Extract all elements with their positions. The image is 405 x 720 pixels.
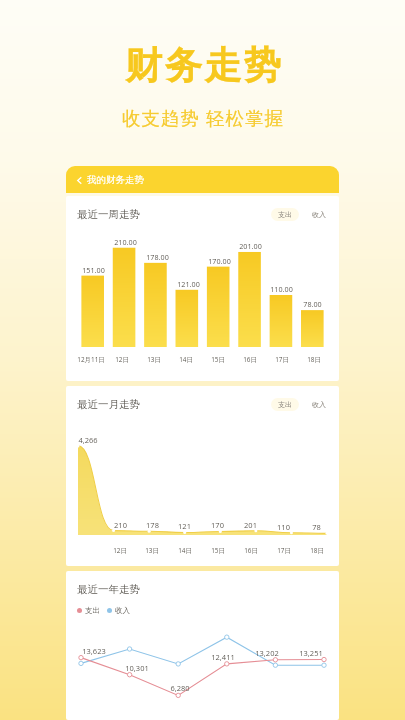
staticText: 121.00 bbox=[177, 279, 200, 289]
staticText: 178.00 bbox=[146, 252, 169, 262]
staticText: 201.00 bbox=[239, 241, 262, 251]
staticText: 78.00 bbox=[303, 299, 322, 309]
button[interactable]: 最近一月走势 bbox=[66, 386, 339, 566]
staticText: 18日 bbox=[310, 546, 324, 555]
staticText: 18日 bbox=[307, 355, 321, 364]
button[interactable]: 最近一年走势 bbox=[66, 571, 339, 720]
staticText: 13,202 bbox=[255, 648, 279, 658]
staticText: 12日 bbox=[115, 355, 129, 364]
staticText: 6,280 bbox=[170, 683, 190, 693]
staticText: 170.00 bbox=[208, 256, 231, 266]
staticText: 16日 bbox=[243, 355, 257, 364]
staticText: 201 bbox=[244, 520, 257, 530]
staticText: 最近一周走势 bbox=[77, 208, 140, 221]
staticText: 收支趋势 轻松掌握 bbox=[122, 105, 284, 130]
staticText: 最近一年走势 bbox=[77, 583, 140, 596]
staticText: 收入 bbox=[312, 400, 326, 409]
staticText: 最近一月走势 bbox=[77, 398, 140, 411]
staticText: 210 bbox=[114, 520, 127, 530]
staticText: 17日 bbox=[275, 355, 289, 364]
staticText: 170 bbox=[211, 520, 224, 530]
staticText: 收入 bbox=[312, 210, 326, 219]
staticText: 210.00 bbox=[114, 237, 137, 247]
staticText: 15日 bbox=[211, 355, 225, 364]
staticText: 78 bbox=[312, 522, 321, 532]
button[interactable]: 最近一周走势 bbox=[66, 196, 339, 381]
staticText: 我的财务走势 bbox=[87, 174, 144, 186]
staticText: 13,251 bbox=[299, 648, 323, 658]
staticText: 151.00 bbox=[82, 265, 105, 275]
staticText: 15日 bbox=[211, 546, 225, 555]
staticText: 16日 bbox=[244, 546, 258, 555]
button[interactable]: 支出 bbox=[271, 398, 299, 411]
staticText: 110.00 bbox=[270, 284, 293, 294]
staticText: 13日 bbox=[147, 355, 161, 364]
staticText: 10,301 bbox=[125, 663, 149, 673]
staticText: 121 bbox=[178, 521, 191, 531]
staticText: 收入 bbox=[115, 606, 130, 615]
button[interactable]: 收入 bbox=[310, 208, 328, 221]
staticText: 110 bbox=[277, 522, 290, 532]
staticText: 支出 bbox=[278, 400, 292, 409]
staticText: 支出 bbox=[85, 606, 100, 615]
staticText: 支出 bbox=[278, 210, 292, 219]
staticText: 14日 bbox=[178, 546, 192, 555]
staticText: 178 bbox=[146, 520, 159, 530]
button[interactable]: Back bbox=[72, 173, 86, 187]
button[interactable]: 支出 bbox=[271, 208, 299, 221]
staticText: 12月11日 bbox=[77, 355, 105, 364]
staticText: 13日 bbox=[145, 546, 159, 555]
staticText: 17日 bbox=[277, 546, 291, 555]
staticText: 14日 bbox=[179, 355, 193, 364]
staticText: 13,623 bbox=[82, 646, 106, 656]
button[interactable]: 收入 bbox=[310, 398, 328, 411]
staticText: 财务走势 bbox=[124, 42, 282, 89]
staticText: 12,411 bbox=[211, 652, 235, 662]
staticText: 12日 bbox=[113, 546, 127, 555]
staticText: 4,266 bbox=[78, 435, 98, 445]
